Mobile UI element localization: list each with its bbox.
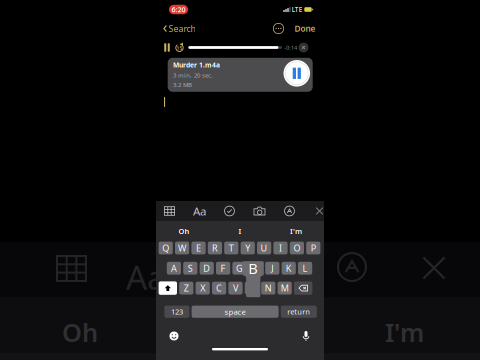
button[interactable]: Z bbox=[179, 282, 193, 294]
button[interactable]: Markup bbox=[278, 201, 300, 221]
button[interactable]: X bbox=[196, 282, 210, 294]
button[interactable]: Checklist bbox=[218, 201, 240, 221]
staticText: -0:14 bbox=[284, 44, 297, 51]
button[interactable]: C bbox=[212, 282, 226, 294]
staticText: H bbox=[252, 262, 259, 274]
staticText: R bbox=[212, 242, 218, 254]
staticText: 15 bbox=[176, 45, 182, 52]
staticText: Aa bbox=[126, 254, 166, 299]
button[interactable]: Skip back 15 seconds bbox=[173, 41, 186, 54]
staticText: 3 min, 20 sec. bbox=[173, 71, 213, 79]
staticText: N bbox=[265, 282, 272, 294]
button[interactable]: M bbox=[278, 282, 292, 294]
button[interactable]: Close player bbox=[297, 41, 310, 54]
button[interactable]: Aa bbox=[188, 201, 210, 221]
button[interactable]: Camera bbox=[248, 201, 270, 221]
staticText: Search bbox=[168, 22, 195, 34]
staticText: Aa bbox=[193, 203, 206, 219]
button[interactable]: Done bbox=[286, 21, 324, 36]
staticText: I bbox=[279, 242, 282, 254]
staticText: I'm bbox=[290, 226, 302, 236]
button[interactable]: Close toolbar bbox=[308, 201, 330, 221]
staticText: P bbox=[311, 242, 316, 254]
staticText: Z bbox=[184, 282, 189, 294]
button[interactable]: A bbox=[167, 262, 181, 275]
staticText: X bbox=[200, 282, 205, 294]
button[interactable]: Pause bbox=[161, 41, 173, 54]
button[interactable]: G bbox=[232, 262, 247, 275]
button[interactable]: Y bbox=[241, 242, 255, 254]
button[interactable]: V bbox=[228, 282, 243, 294]
button[interactable]: space bbox=[192, 306, 279, 318]
button[interactable]: P bbox=[306, 242, 320, 254]
staticText: M bbox=[281, 282, 289, 294]
staticText: Murder 1.m4a bbox=[173, 60, 220, 69]
staticText: Oh bbox=[62, 315, 98, 349]
button[interactable]: W bbox=[175, 242, 189, 254]
staticText: C bbox=[216, 282, 222, 294]
button[interactable]: E bbox=[191, 242, 206, 254]
staticText: E bbox=[196, 242, 201, 254]
button[interactable]: J bbox=[265, 262, 279, 275]
staticText: Oh bbox=[178, 226, 189, 236]
button[interactable]: H bbox=[249, 262, 263, 275]
staticText: G bbox=[236, 262, 243, 274]
staticText: return bbox=[287, 307, 310, 317]
button[interactable]: Dictate bbox=[296, 328, 316, 344]
button[interactable]: Table bbox=[158, 201, 180, 221]
button[interactable]: U bbox=[257, 242, 271, 254]
staticText: LTE bbox=[292, 5, 303, 14]
button[interactable]: D bbox=[200, 262, 214, 275]
staticText: B bbox=[248, 258, 258, 278]
button[interactable]: Search bbox=[156, 21, 195, 36]
staticText: 6:20 bbox=[171, 5, 185, 14]
staticText: S bbox=[188, 262, 193, 274]
staticText: I bbox=[238, 226, 241, 236]
button[interactable]: Emoji bbox=[164, 328, 184, 344]
staticText: W bbox=[178, 242, 186, 254]
button[interactable]: Q bbox=[159, 242, 173, 254]
staticText: O bbox=[293, 242, 300, 254]
button[interactable]: N bbox=[261, 282, 275, 294]
staticText: K bbox=[286, 262, 292, 274]
button[interactable]: S bbox=[183, 262, 197, 275]
staticText: U bbox=[261, 242, 268, 254]
button[interactable]: I bbox=[273, 242, 288, 254]
button[interactable]: return bbox=[281, 306, 317, 318]
staticText: space bbox=[225, 306, 246, 317]
button[interactable]: O bbox=[290, 242, 304, 254]
staticText: V bbox=[233, 282, 238, 294]
button[interactable]: L bbox=[298, 262, 312, 275]
button[interactable]: F bbox=[216, 262, 230, 275]
staticText: T bbox=[229, 242, 234, 254]
staticText: 3.2 MB bbox=[173, 81, 192, 89]
button[interactable]: Delete bbox=[294, 281, 312, 295]
button[interactable]: R bbox=[208, 242, 222, 254]
button[interactable]: T bbox=[224, 242, 238, 254]
staticText: A bbox=[171, 262, 177, 274]
staticText: Done bbox=[294, 23, 315, 34]
staticText: Q bbox=[162, 242, 169, 254]
button[interactable]: Oh bbox=[156, 222, 212, 240]
staticText: D bbox=[203, 262, 210, 274]
staticText: L bbox=[303, 262, 308, 274]
button[interactable]: 123 bbox=[164, 306, 189, 318]
button[interactable]: I'm bbox=[268, 222, 324, 240]
button[interactable]: Shift bbox=[159, 281, 177, 295]
staticText: Y bbox=[245, 242, 250, 254]
button[interactable]: More bbox=[271, 21, 286, 36]
staticText: F bbox=[221, 262, 226, 274]
button[interactable]: K bbox=[282, 262, 296, 275]
staticText: 123 bbox=[171, 307, 183, 317]
button[interactable]: I bbox=[212, 222, 268, 240]
staticText: J bbox=[271, 262, 273, 274]
staticText: I'm bbox=[385, 315, 424, 349]
